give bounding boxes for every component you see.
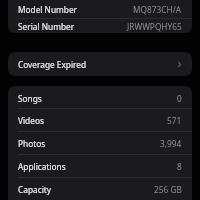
button[interactable]: Songs: [8, 89, 192, 108]
staticText: 571: [167, 115, 182, 126]
staticText: Videos: [18, 115, 44, 126]
staticText: MQ873CH/A: [133, 4, 182, 15]
other: Coverage details: [175, 60, 184, 69]
staticText: 3,994: [160, 138, 182, 149]
staticText: JRWWPQHY65: [127, 21, 182, 32]
staticText: 256 GB: [154, 184, 182, 195]
button[interactable]: Model Number: [8, 0, 192, 18]
button[interactable]: Coverage Expired: [8, 52, 192, 76]
button[interactable]: Applications: [8, 155, 192, 177]
staticText: Applications: [18, 161, 66, 172]
staticText: Photos: [18, 138, 46, 149]
staticText: 0: [177, 93, 182, 104]
button[interactable]: Videos: [8, 109, 192, 131]
staticText: 8: [177, 161, 182, 172]
staticText: Model Number: [18, 4, 78, 15]
staticText: Songs: [18, 93, 42, 104]
button[interactable]: Capacity: [8, 178, 192, 200]
staticText: Capacity: [18, 184, 52, 195]
staticText: Coverage Expired: [18, 59, 87, 70]
button[interactable]: Serial Number: [8, 19, 192, 33]
staticText: Serial Number: [18, 21, 75, 32]
button[interactable]: Photos: [8, 132, 192, 154]
